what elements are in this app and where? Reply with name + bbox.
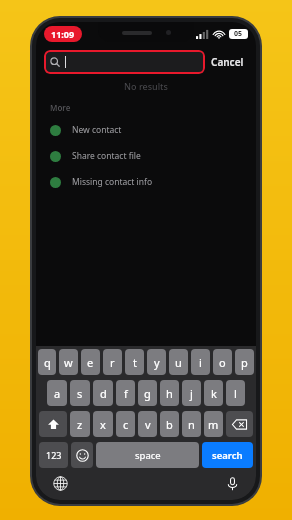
staticText: f (124, 386, 128, 401)
staticText: j (190, 386, 193, 401)
staticText: space (135, 449, 161, 462)
button[interactable] (44, 50, 205, 74)
button[interactable]: j (182, 380, 201, 406)
staticText: u (175, 355, 182, 370)
button[interactable]: g (138, 380, 157, 406)
button[interactable]: space (96, 442, 199, 468)
button[interactable]: 123 (39, 442, 68, 468)
button[interactable]: q (38, 349, 56, 375)
button[interactable]: h (160, 380, 179, 406)
button[interactable]: Backspace (226, 411, 253, 437)
button[interactable]: r (103, 349, 122, 375)
staticText: t (133, 355, 137, 370)
staticText: c (123, 417, 129, 432)
button[interactable]: d (93, 380, 113, 406)
staticText: e (87, 355, 94, 370)
staticText: r (110, 355, 115, 370)
staticText: x (100, 417, 106, 432)
button[interactable]: c (116, 411, 135, 437)
staticText: w (64, 355, 73, 370)
button[interactable]: Emoji (71, 442, 93, 468)
button[interactable]: f (116, 380, 135, 406)
staticText: z (77, 417, 83, 432)
staticText: No results (124, 80, 168, 92)
button[interactable]: Share contact file (36, 143, 256, 169)
staticText: 05 (234, 29, 243, 39)
staticText: l (234, 386, 237, 401)
button[interactable]: New contact (36, 117, 256, 143)
staticText: s (77, 386, 83, 401)
button[interactable]: search (202, 442, 253, 468)
staticText: b (166, 417, 173, 432)
staticText: y (154, 355, 160, 370)
button[interactable]: a (47, 380, 67, 406)
staticText: New contact (72, 124, 122, 136)
staticText: n (188, 417, 195, 432)
staticText: p (241, 355, 248, 370)
staticText: i (199, 355, 202, 370)
staticText: 11:09 (51, 28, 75, 40)
button[interactable]: t (125, 349, 144, 375)
button[interactable]: k (204, 380, 223, 406)
button[interactable]: Dictation (222, 473, 242, 493)
button[interactable]: v (138, 411, 157, 437)
button[interactable]: i (191, 349, 210, 375)
staticText: q (44, 355, 51, 370)
button[interactable]: s (70, 380, 90, 406)
staticText: v (145, 417, 151, 432)
button[interactable]: w (59, 349, 78, 375)
button[interactable]: x (93, 411, 113, 437)
button[interactable]: n (182, 411, 201, 437)
staticText: g (144, 386, 151, 401)
button[interactable]: m (204, 411, 223, 437)
button[interactable]: p (235, 349, 254, 375)
staticText: Share contact file (72, 150, 141, 162)
staticText: h (166, 386, 173, 401)
button[interactable]: y (147, 349, 166, 375)
button[interactable]: z (70, 411, 90, 437)
staticText: Cancel (211, 55, 244, 69)
button[interactable]: o (213, 349, 232, 375)
staticText: Missing contact info (72, 176, 153, 188)
button[interactable]: e (81, 349, 100, 375)
staticText: 123 (46, 449, 62, 461)
button[interactable]: Cancel (205, 51, 250, 73)
button[interactable]: Shift (39, 411, 67, 437)
button[interactable]: u (169, 349, 188, 375)
staticText: d (100, 386, 107, 401)
staticText: More (50, 102, 71, 113)
button[interactable]: b (160, 411, 179, 437)
staticText: a (54, 386, 61, 401)
staticText: m (208, 417, 219, 432)
button[interactable]: Missing contact info (36, 169, 256, 195)
staticText: k (211, 386, 217, 401)
button[interactable]: l (226, 380, 245, 406)
staticText: search (212, 449, 243, 462)
button[interactable]: Change keyboard language (50, 473, 70, 493)
staticText: o (219, 355, 226, 370)
